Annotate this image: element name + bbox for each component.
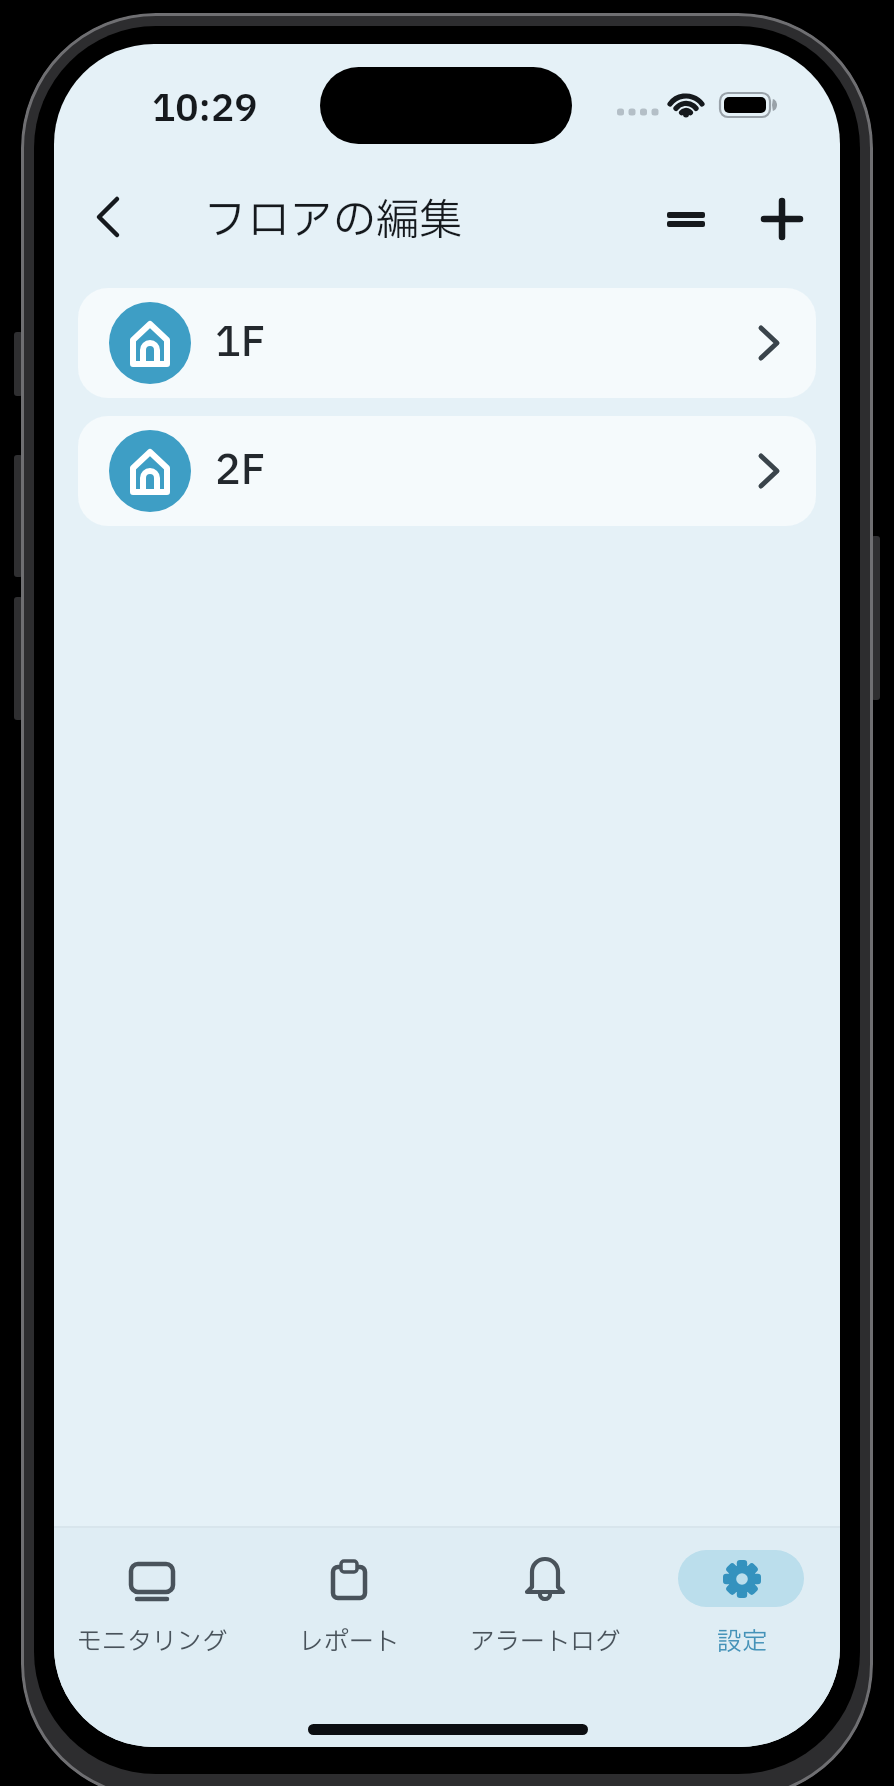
staticText: アラートログ bbox=[470, 1624, 621, 1661]
button[interactable]: 1F bbox=[78, 288, 816, 398]
button[interactable]: 2F bbox=[78, 416, 816, 526]
button[interactable] bbox=[749, 186, 815, 252]
staticText: フロアの編集 bbox=[204, 189, 462, 249]
staticText: 設定 bbox=[717, 1624, 768, 1661]
button[interactable] bbox=[652, 189, 722, 249]
staticText: 2F bbox=[215, 441, 266, 502]
button[interactable]: 設定 bbox=[647, 1542, 837, 1672]
button[interactable]: アラートログ bbox=[450, 1542, 640, 1672]
button[interactable] bbox=[84, 184, 134, 254]
button[interactable]: モニタリング bbox=[57, 1542, 247, 1672]
staticText: 1F bbox=[215, 313, 266, 374]
button[interactable]: レポート bbox=[254, 1542, 444, 1672]
staticText: モニタリング bbox=[77, 1624, 228, 1661]
staticText: 10:29 bbox=[152, 82, 258, 132]
staticText: レポート bbox=[299, 1624, 400, 1661]
